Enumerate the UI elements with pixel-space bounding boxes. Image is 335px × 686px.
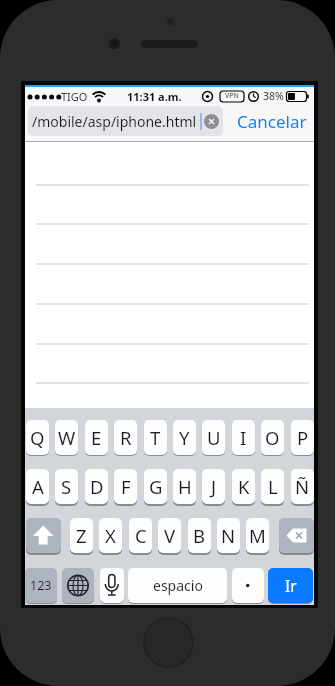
staticText: W	[58, 425, 76, 450]
staticText: R	[120, 425, 132, 450]
button[interactable]	[279, 518, 314, 553]
staticText: I	[240, 425, 247, 450]
staticText: E	[91, 425, 102, 450]
button[interactable]: N	[217, 518, 240, 553]
button[interactable]	[232, 568, 264, 603]
staticText: espacio	[153, 576, 203, 595]
button[interactable]: V	[158, 518, 181, 553]
button[interactable]: Ñ	[291, 469, 314, 504]
button[interactable]: M	[246, 518, 269, 553]
button[interactable]	[100, 568, 124, 603]
button[interactable]	[204, 114, 219, 129]
button[interactable]: O	[261, 420, 284, 455]
button[interactable]: Cancelar	[236, 106, 308, 136]
button[interactable]: Ir	[268, 568, 313, 603]
button[interactable]	[62, 568, 94, 603]
button[interactable]: E	[85, 420, 108, 455]
staticText: S	[61, 474, 72, 499]
staticText: K	[238, 474, 250, 499]
button[interactable]	[26, 518, 61, 553]
staticText: 11:31 a.m.	[127, 89, 182, 104]
staticText: TIGO	[61, 89, 88, 104]
staticText: D	[90, 474, 104, 499]
button[interactable]: W	[55, 420, 78, 455]
staticText: Z	[76, 523, 87, 548]
button[interactable]: /mobile/asp/iphone.html	[28, 106, 223, 136]
button[interactable]: I	[232, 420, 255, 455]
staticText: Ir	[285, 575, 297, 596]
button[interactable]: S	[55, 469, 78, 504]
button[interactable]: Q	[26, 420, 49, 455]
staticText: P	[297, 425, 309, 450]
staticText: H	[178, 474, 192, 499]
staticText: 123	[30, 577, 52, 594]
staticText: N	[221, 523, 236, 548]
staticText: C	[135, 523, 147, 548]
staticText: B	[193, 523, 206, 548]
button[interactable]: X	[99, 518, 122, 553]
staticText: 38%	[263, 89, 284, 103]
button[interactable]: Z	[70, 518, 93, 553]
staticText: U	[207, 425, 221, 450]
staticText: J	[211, 474, 217, 499]
staticText: T	[150, 425, 161, 450]
button[interactable]: J	[202, 469, 225, 504]
button[interactable]: K	[232, 469, 255, 504]
staticText: V	[164, 523, 176, 548]
button[interactable]: P	[291, 420, 314, 455]
button[interactable]: U	[202, 420, 225, 455]
button[interactable]: A	[26, 469, 49, 504]
staticText: /mobile/asp/iphone.html	[32, 112, 197, 131]
button[interactable]: D	[85, 469, 108, 504]
staticText: O	[265, 425, 280, 450]
button[interactable]: C	[129, 518, 152, 553]
button[interactable]: T	[144, 420, 167, 455]
staticText: A	[32, 474, 44, 499]
button[interactable]: B	[188, 518, 211, 553]
button[interactable]: F	[114, 469, 137, 504]
button[interactable]: H	[173, 469, 196, 504]
staticText: Ñ	[295, 474, 310, 499]
button[interactable]: G	[144, 469, 167, 504]
staticText: Y	[179, 425, 190, 450]
staticText: Q	[30, 425, 45, 450]
staticText: VPN	[225, 91, 239, 101]
staticText: Cancelar	[237, 110, 307, 133]
button[interactable]: Y	[173, 420, 196, 455]
staticText: X	[105, 523, 116, 548]
staticText: F	[121, 474, 131, 499]
staticText: G	[149, 474, 163, 499]
button[interactable]: 123	[25, 568, 57, 603]
button[interactable]: espacio	[128, 568, 227, 603]
staticText: M	[249, 523, 266, 548]
button[interactable]: R	[114, 420, 137, 455]
staticText: L	[268, 474, 278, 499]
button[interactable]: L	[261, 469, 284, 504]
